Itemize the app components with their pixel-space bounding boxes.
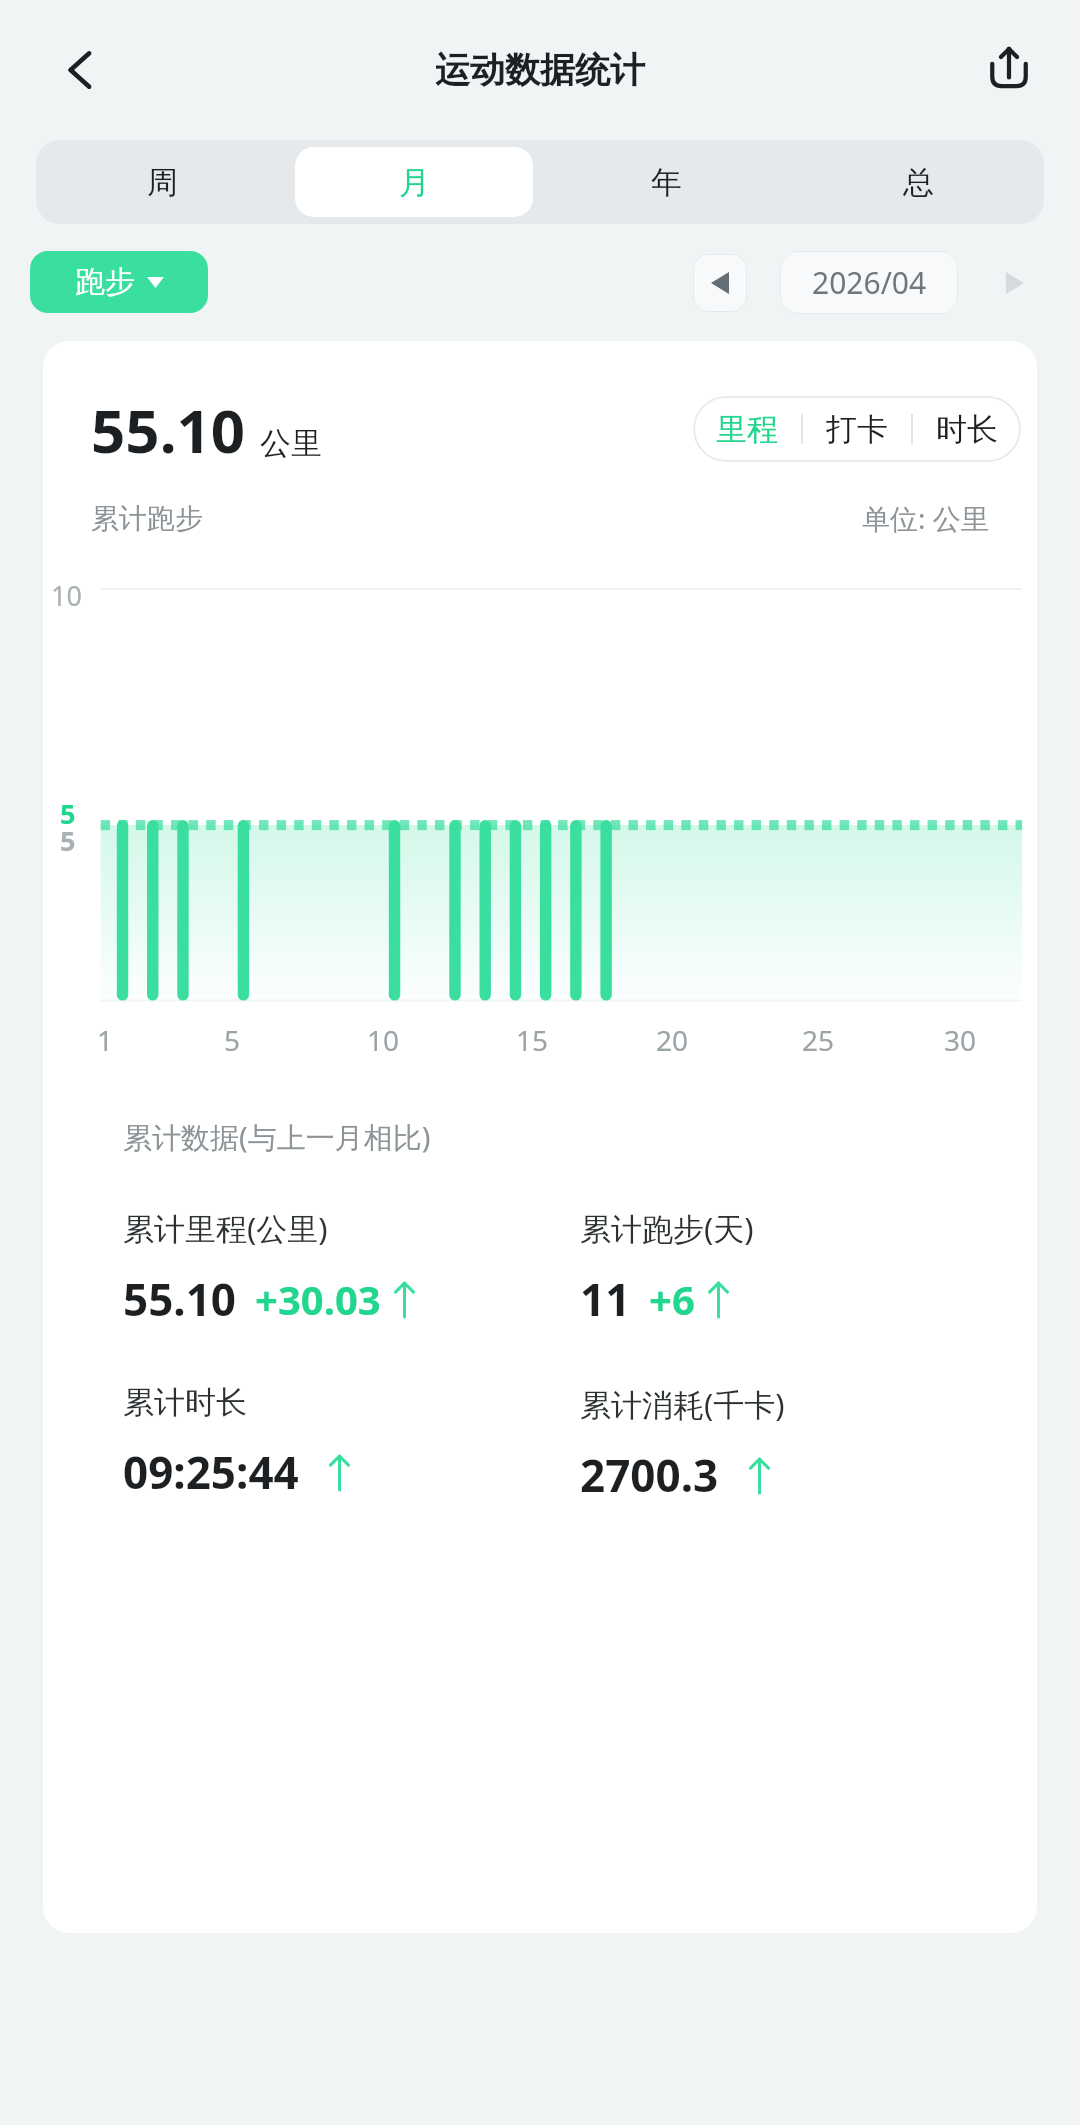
staticText: 打卡 [826,410,888,449]
button[interactable]: 里程 [716,396,778,462]
button[interactable]: 时长 [936,396,998,462]
staticText: 09:25:44 [123,1442,299,1502]
button[interactable]: Next month [988,254,1042,312]
staticText: 11 [580,1269,631,1329]
button[interactable]: 周 [43,147,281,217]
staticText: 20 [656,1021,689,1059]
staticText: 累计消耗(千卡) [580,1383,785,1425]
staticText: 5 [60,795,76,832]
staticText: 运动数据统计 [435,48,645,92]
staticText: 时长 [936,410,998,449]
button[interactable]: 2026/04 [780,251,958,314]
staticText: 公里 [260,424,322,463]
staticText: 5 [60,822,76,859]
staticText: 55.10 [123,1269,237,1329]
staticText: 2026/04 [812,262,927,303]
staticText: 30 [944,1021,977,1059]
staticText: 累计数据(与上一月相比) [123,1117,431,1157]
button[interactable]: 打卡 [826,396,888,462]
staticText: +6 [649,1272,695,1326]
staticText: 累计时长 [123,1383,247,1422]
button[interactable]: 年 [547,147,785,217]
staticText: 15 [516,1021,549,1059]
button[interactable]: Back [52,39,114,101]
button[interactable]: 跑步 [30,251,208,313]
staticText: 5 [224,1021,241,1059]
staticText: 2700.3 [580,1445,719,1505]
staticText: 累计里程(公里) [123,1207,328,1249]
staticText: 10 [51,577,82,614]
staticText: 周 [147,163,178,202]
staticText: 1 [97,1021,114,1059]
staticText: 单位: 公里 [862,499,989,537]
staticText: 10 [367,1021,400,1059]
button[interactable]: 月 [295,147,533,217]
staticText: 55.10 [91,389,246,469]
staticText: 25 [802,1021,835,1059]
button[interactable]: Previous month [693,254,747,312]
staticText: 总 [903,163,934,202]
staticText: 月 [399,163,430,202]
staticText: 累计跑步(天) [580,1207,754,1249]
button[interactable]: Share [978,39,1040,101]
staticText: 里程 [716,410,778,449]
button[interactable]: 总 [799,147,1037,217]
staticText: +30.03 [255,1272,381,1326]
staticText: 年 [651,163,682,202]
staticText: 累计跑步 [91,501,203,536]
staticText: 跑步 [75,263,135,301]
